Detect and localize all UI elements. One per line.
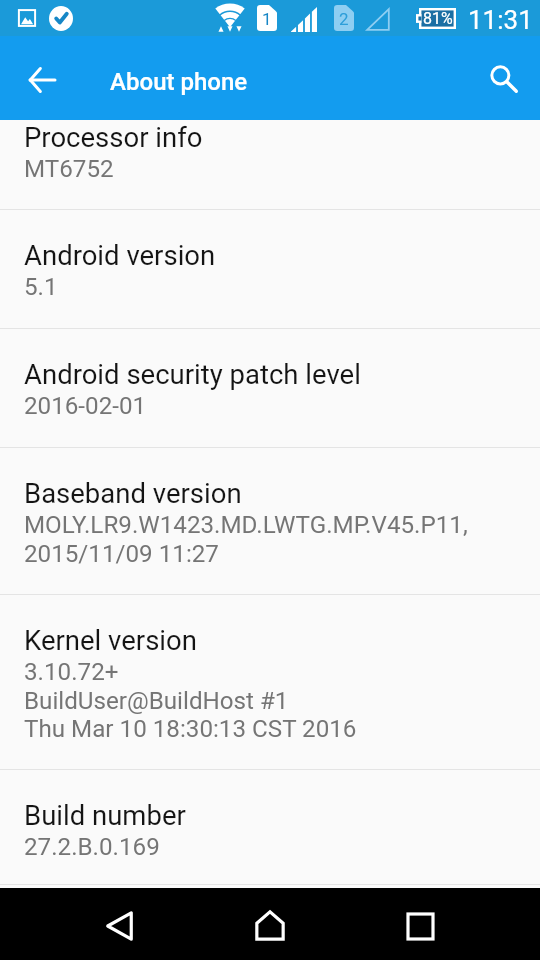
button[interactable]: Recent apps xyxy=(361,888,481,960)
staticText: MT6752 xyxy=(24,155,114,183)
staticText: Kernel version xyxy=(24,624,197,656)
staticText: Android version xyxy=(24,239,216,271)
button[interactable]: Baseband version xyxy=(0,448,540,594)
staticText: Android security patch level xyxy=(24,358,361,390)
button[interactable]: Build number xyxy=(0,770,540,884)
staticText: 3.10.72+ BuildUser@BuildHost #1 Thu Mar … xyxy=(24,658,357,742)
button[interactable]: Home xyxy=(210,888,330,960)
button[interactable]: Search xyxy=(456,36,540,120)
staticText: Build number xyxy=(24,799,186,831)
staticText: 81% xyxy=(423,9,453,28)
staticText: Processor info xyxy=(24,121,203,153)
button[interactable]: Android version xyxy=(0,210,540,328)
staticText: About phone xyxy=(110,68,248,96)
staticText: 11:31 xyxy=(468,5,533,35)
staticText: 1 xyxy=(262,9,272,29)
button[interactable]: Kernel version xyxy=(0,595,540,769)
staticText: 2016-02-01 xyxy=(24,392,147,420)
staticText: 2 xyxy=(339,9,349,29)
staticText: MOLY.LR9.W1423.MD.LWTG.MP.V45.P11, 2015/… xyxy=(24,511,468,567)
button[interactable]: Android security patch level xyxy=(0,329,540,447)
staticText: 27.2.B.0.169 xyxy=(24,833,160,861)
staticText: 5.1 xyxy=(24,273,58,301)
staticText: Baseband version xyxy=(24,477,242,509)
button[interactable]: Back xyxy=(0,36,84,120)
button[interactable]: Back xyxy=(59,888,179,960)
button[interactable]: Processor info xyxy=(0,120,540,209)
